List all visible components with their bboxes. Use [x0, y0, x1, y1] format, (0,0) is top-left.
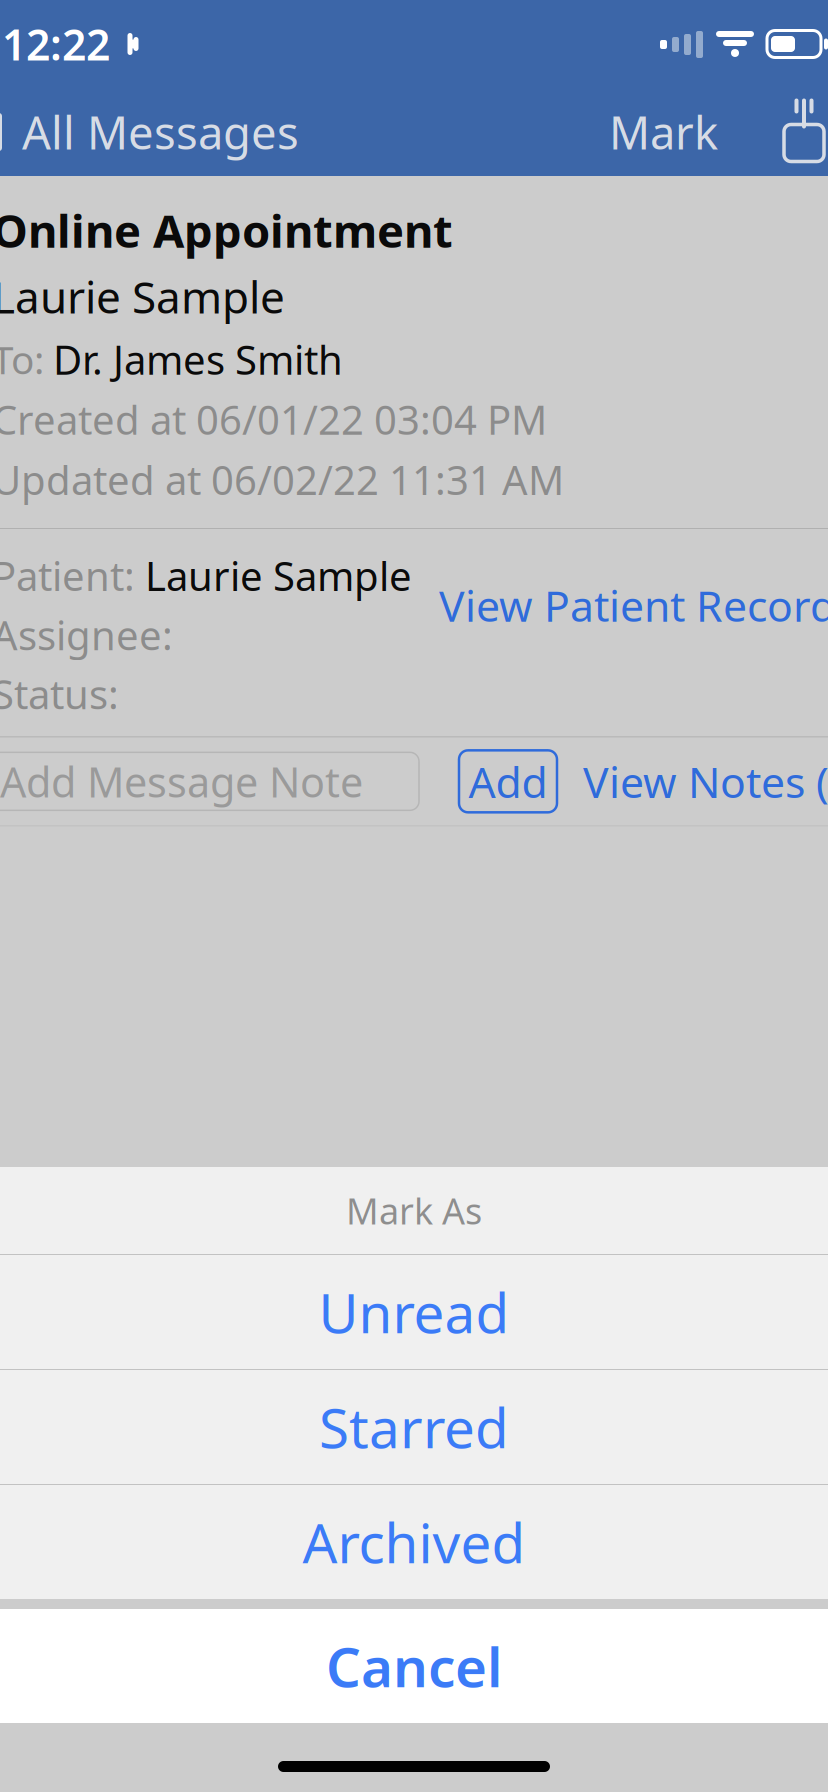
staticText: Add Message Note [0, 754, 363, 809]
staticText: Status: [0, 667, 119, 720]
staticText: To: [0, 333, 44, 385]
staticText: Mark [609, 102, 718, 162]
button[interactable]: View Patient Record [429, 549, 828, 644]
staticText: Unread [318, 1276, 509, 1348]
staticText: All Messages [22, 102, 299, 162]
button[interactable]: Add Message Note [0, 752, 419, 810]
staticText: Laurie Sample [145, 549, 412, 602]
staticText: View Notes (1) [583, 753, 828, 810]
button[interactable]: Starred [0, 1370, 828, 1484]
staticText: Assignee: [0, 608, 173, 661]
staticText: 12:22 [2, 16, 110, 72]
staticText: Laurie Sample [0, 267, 285, 326]
staticText: Starred [319, 1391, 509, 1463]
staticText: Patient: [0, 549, 135, 602]
staticText: Dr. James Smith [53, 333, 343, 386]
button[interactable]: Cancel [0, 1609, 828, 1723]
staticText: View Patient Record [439, 577, 828, 634]
button[interactable]: Unread [0, 1255, 828, 1369]
staticText: Online Appointment [0, 200, 453, 260]
staticText: Cancel [326, 1630, 502, 1702]
button[interactable]: View Notes (1) [583, 739, 828, 824]
button[interactable]: Add [459, 750, 557, 812]
staticText: Updated at 06/02/22 11:31 AM [0, 453, 564, 506]
button[interactable]: Share [762, 88, 828, 176]
staticText: Mark As [346, 1187, 482, 1234]
staticText: Archived [302, 1506, 525, 1578]
button[interactable]: All Messages [0, 88, 317, 176]
button[interactable]: Mark [591, 88, 736, 176]
staticText: Created at 06/01/22 03:04 PM [0, 393, 547, 446]
button[interactable]: Archived [0, 1485, 828, 1599]
staticText: Add [468, 753, 547, 810]
